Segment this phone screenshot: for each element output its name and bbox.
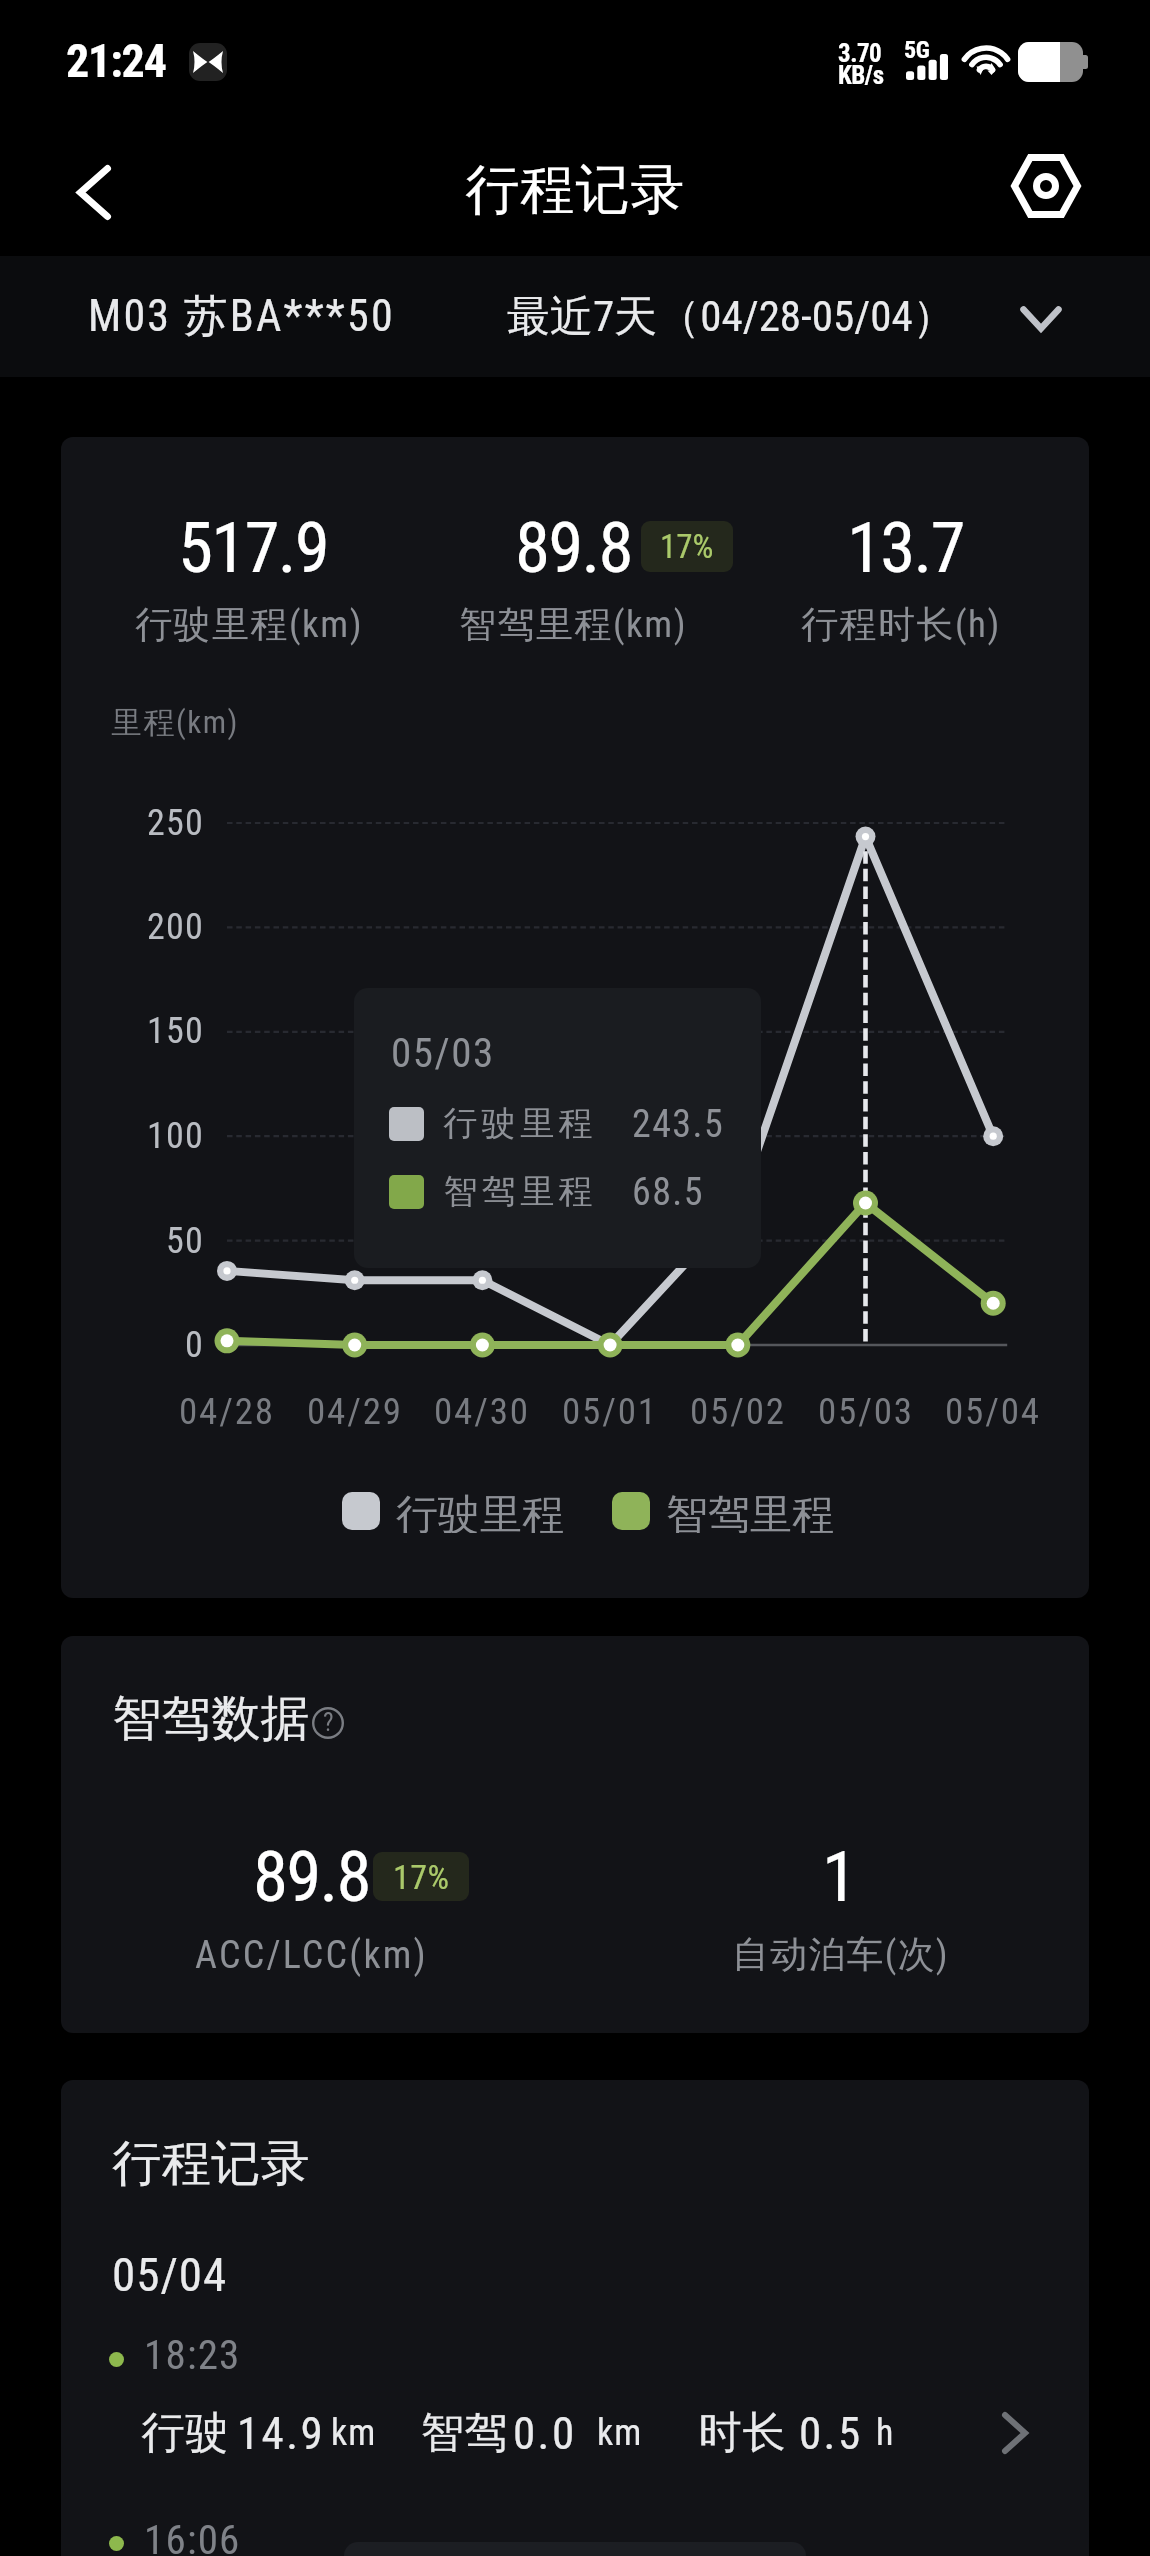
- staticText: 04/30: [434, 1390, 530, 1433]
- staticText: 18:23: [144, 2331, 241, 2379]
- staticText: 250: [147, 802, 204, 844]
- staticText: 智驾里程: [441, 1170, 595, 1213]
- staticText: 行程记录: [112, 2133, 310, 2195]
- staticText: 100: [147, 1115, 204, 1157]
- staticText: 50: [166, 1220, 204, 1262]
- staticText: ?: [323, 1708, 334, 1737]
- staticText: km: [331, 2412, 377, 2454]
- staticText: 17%: [660, 527, 714, 566]
- staticText: 16:06: [144, 2516, 241, 2556]
- staticText: 68.5: [632, 1170, 704, 1215]
- staticText: 行驶里程(km): [135, 601, 363, 648]
- staticText: 243.5: [632, 1102, 725, 1147]
- staticText: 时长: [698, 2406, 786, 2460]
- staticText: ACC/LCC(km): [195, 1933, 428, 1978]
- staticText: 89.8: [253, 1835, 370, 1918]
- staticText: 05/04: [112, 2247, 228, 2302]
- staticText: 智驾: [420, 2406, 508, 2460]
- staticText: 200: [147, 906, 204, 948]
- button[interactable]: Settings: [996, 136, 1096, 236]
- staticText: 行驶里程: [396, 1489, 564, 1533]
- staticText: 14.9: [237, 2407, 326, 2460]
- button[interactable]: Back: [44, 142, 144, 242]
- staticText: 智驾里程: [666, 1489, 834, 1533]
- staticText: 05/03: [818, 1390, 914, 1433]
- staticText: 17%: [393, 1857, 450, 1897]
- button[interactable]: About smart driving data: [308, 1703, 348, 1743]
- staticText: h: [876, 2412, 895, 2454]
- staticText: 05/01: [562, 1390, 658, 1433]
- button[interactable]: [61, 2310, 1089, 2475]
- button[interactable]: 最近7天（04/28-05/04）: [500, 256, 1070, 377]
- staticText: 517.9: [178, 506, 328, 589]
- staticText: KB/s: [838, 61, 884, 90]
- staticText: 自动泊车(次): [732, 1931, 949, 1978]
- staticText: 13.7: [847, 506, 964, 589]
- staticText: 行驶: [141, 2406, 229, 2460]
- staticText: 0: [185, 1324, 204, 1366]
- staticText: 05/02: [690, 1390, 786, 1433]
- staticText: 0.5: [799, 2407, 863, 2460]
- button[interactable]: [61, 2495, 1089, 2556]
- staticText: 行程时长(h): [801, 601, 1001, 648]
- staticText: 智驾里程(km): [459, 601, 687, 648]
- staticText: 05/03: [391, 1029, 495, 1077]
- staticText: 行驶里程: [441, 1102, 595, 1145]
- staticText: 21:24: [66, 34, 166, 88]
- button[interactable]: 行驶里程: [342, 1489, 564, 1533]
- staticText: 150: [147, 1010, 204, 1052]
- staticText: 最近7天（04/28-05/04）: [507, 290, 956, 344]
- button[interactable]: 智驾里程: [612, 1489, 834, 1533]
- staticText: 89.8: [515, 506, 632, 589]
- staticText: 行程记录: [465, 156, 685, 224]
- staticText: 1: [822, 1835, 858, 1918]
- staticText: 3.70: [838, 39, 882, 68]
- button[interactable]: M03 苏BA***50: [80, 256, 410, 377]
- staticText: M03 苏BA***50: [88, 289, 395, 344]
- staticText: 04/28: [179, 1390, 275, 1433]
- staticText: km: [597, 2412, 643, 2454]
- staticText: 5G: [904, 36, 930, 64]
- staticText: 05/04: [945, 1390, 1041, 1433]
- staticText: 智驾数据: [112, 1688, 310, 1750]
- staticText: 里程(km): [111, 703, 239, 742]
- staticText: 0.0: [513, 2407, 577, 2460]
- staticText: 04/29: [307, 1390, 403, 1433]
